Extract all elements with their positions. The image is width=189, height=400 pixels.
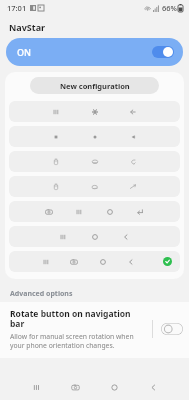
button[interactable]: Rotate button toggle: [161, 323, 183, 335]
button[interactable]: Home: [104, 377, 124, 397]
button[interactable]: [9, 151, 180, 172]
button[interactable]: Back: [143, 377, 163, 397]
button[interactable]: New configuration: [30, 77, 159, 94]
button[interactable]: Rotate button on navigation bar: [0, 302, 189, 358]
button[interactable]: [9, 226, 180, 247]
staticText: Allow for manual screen rotation when yo…: [10, 332, 146, 350]
button[interactable]: [9, 126, 180, 147]
staticText: Rotate button on navigation bar: [10, 308, 146, 330]
staticText: Advanced options: [10, 289, 73, 299]
button[interactable]: [9, 176, 180, 197]
button[interactable]: [9, 251, 180, 272]
staticText: NavStar: [9, 21, 46, 33]
staticText: 17:01: [7, 3, 27, 13]
button[interactable]: [9, 101, 180, 122]
staticText: ON: [17, 46, 32, 58]
button[interactable]: Recents: [26, 377, 46, 397]
button[interactable]: [9, 201, 180, 222]
button[interactable]: ON: [6, 38, 183, 66]
staticText: New configuration: [60, 81, 130, 91]
staticText: 66%: [162, 3, 177, 13]
button[interactable]: Camera: [65, 377, 85, 397]
